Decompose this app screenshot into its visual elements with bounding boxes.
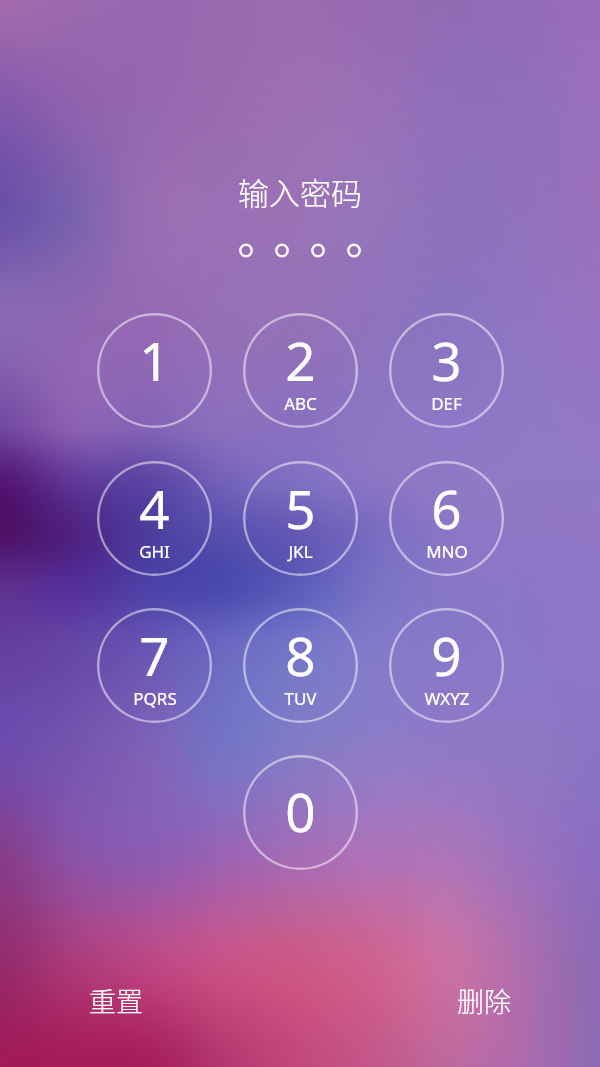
- staticText: ABC: [284, 392, 317, 415]
- button[interactable]: 重置: [62, 974, 170, 1026]
- button[interactable]: 2: [243, 313, 358, 428]
- button[interactable]: 7: [97, 608, 212, 723]
- staticText: 8: [285, 619, 316, 691]
- staticText: MNO: [426, 540, 468, 563]
- staticText: 删除: [457, 981, 511, 1020]
- staticText: DEF: [431, 392, 462, 415]
- staticText: GHI: [139, 540, 170, 563]
- staticText: JKL: [288, 540, 313, 563]
- staticText: PQRS: [133, 687, 177, 710]
- staticText: 9: [431, 619, 462, 691]
- button[interactable]: 1: [97, 313, 212, 428]
- button[interactable]: 9: [389, 608, 504, 723]
- staticText: 6: [431, 472, 462, 544]
- staticText: WXYZ: [424, 687, 470, 710]
- staticText: 0: [285, 775, 316, 847]
- button[interactable]: 8: [243, 608, 358, 723]
- staticText: 3: [431, 324, 462, 396]
- button[interactable]: 删除: [430, 974, 538, 1026]
- staticText: TUV: [284, 687, 317, 710]
- staticText: 7: [139, 619, 170, 691]
- staticText: 4: [139, 472, 170, 544]
- staticText: 2: [285, 324, 316, 396]
- staticText: 重置: [89, 981, 143, 1020]
- button[interactable]: 4: [97, 461, 212, 576]
- staticText: 输入密码: [238, 169, 362, 213]
- button[interactable]: 5: [243, 461, 358, 576]
- button[interactable]: 0: [243, 755, 358, 870]
- staticText: 1: [139, 324, 170, 396]
- button[interactable]: 6: [389, 461, 504, 576]
- staticText: 5: [285, 472, 316, 544]
- button[interactable]: 3: [389, 313, 504, 428]
